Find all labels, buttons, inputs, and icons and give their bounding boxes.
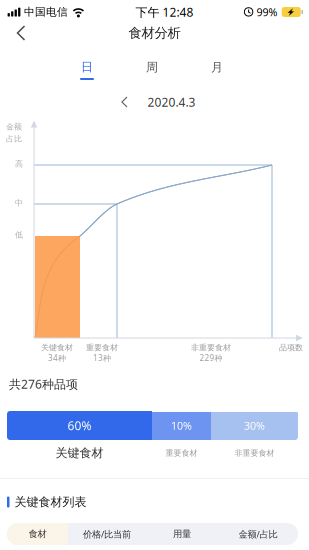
staticText: 重要食材 xyxy=(165,448,197,458)
staticText: 99% xyxy=(256,5,277,19)
staticText: 229种 xyxy=(199,353,222,363)
staticText: 低 xyxy=(15,230,23,240)
staticText: 重要食材 xyxy=(86,343,118,352)
staticText: 周 xyxy=(146,60,158,75)
staticText: 34种 xyxy=(48,353,66,363)
staticText: 下午 12:48 xyxy=(135,4,193,20)
staticText: 金额 xyxy=(6,122,22,132)
staticText: 高 xyxy=(15,159,23,169)
button[interactable]: 日 xyxy=(63,60,111,86)
staticText: 中 xyxy=(15,198,23,208)
staticText: 价格/比当前 xyxy=(83,528,131,540)
button[interactable]: Back xyxy=(5,18,37,48)
staticText: 食材 xyxy=(28,528,46,540)
staticText: 13种 xyxy=(93,353,111,363)
staticText: 关键食材 xyxy=(41,343,73,352)
staticText: 月 xyxy=(211,60,223,75)
button[interactable]: 周 xyxy=(128,60,176,86)
staticText: 非重要食材 xyxy=(234,448,274,458)
staticText: 30% xyxy=(244,418,265,433)
staticText: 10% xyxy=(171,418,192,433)
button[interactable]: 月 xyxy=(193,60,241,86)
staticText: 日 xyxy=(81,60,93,74)
staticText: 关键食材列表 xyxy=(14,495,86,509)
staticText: 2020.4.3 xyxy=(147,94,195,110)
button[interactable]: Previous day xyxy=(113,92,135,112)
staticText: 金额/占比 xyxy=(238,528,277,540)
staticText: 非重要食材 xyxy=(191,343,231,352)
staticText: 60% xyxy=(67,417,91,433)
staticText: 共276种品项 xyxy=(9,376,78,392)
staticText: 品项数 xyxy=(279,343,303,352)
staticText: 中国电信 xyxy=(24,5,68,18)
staticText: 用量 xyxy=(173,528,191,540)
staticText: 食材分析 xyxy=(128,25,180,41)
staticText: 关键食材 xyxy=(55,446,103,460)
staticText: 占比 xyxy=(6,134,22,144)
